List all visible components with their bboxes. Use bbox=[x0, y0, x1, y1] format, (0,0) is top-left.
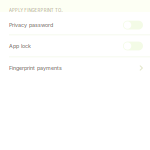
staticText: App lock bbox=[9, 43, 31, 49]
button[interactable]: App lock bbox=[0, 35, 150, 56]
button[interactable]: Privacy password bbox=[0, 16, 150, 34]
staticText: Privacy password bbox=[9, 22, 53, 28]
staticText: Fingerprint payments bbox=[9, 65, 62, 71]
staticText: APPLY FINGERPRINT TO.. bbox=[9, 8, 63, 13]
button[interactable]: Fingerprint payments bbox=[0, 57, 150, 78]
